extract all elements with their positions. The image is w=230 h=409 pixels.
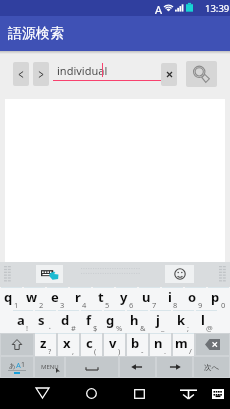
button[interactable]: a: [13, 310, 33, 333]
button[interactable]: c: [81, 333, 102, 356]
staticText: j: [156, 311, 160, 329]
button[interactable]: s: [35, 310, 56, 333]
button[interactable]: Backspace: [196, 334, 229, 355]
button[interactable]: individual: [53, 62, 161, 81]
staticText: g: [106, 311, 115, 329]
staticText: &: [140, 323, 146, 333]
staticText: ;: [187, 323, 190, 333]
button[interactable]: y: [116, 287, 137, 310]
button[interactable]: o: [185, 287, 206, 310]
staticText: i: [168, 288, 172, 306]
button[interactable]: k: [173, 310, 194, 333]
button[interactable]: n: [150, 333, 171, 356]
staticText: a: [17, 311, 25, 329]
button[interactable]: Cursor right: [157, 357, 192, 377]
button[interactable]: h: [127, 310, 148, 333]
staticText: A: [16, 360, 21, 370]
button[interactable]: i: [162, 287, 183, 310]
button[interactable]: m: [173, 333, 194, 356]
staticText: v: [109, 334, 117, 352]
button[interactable]: Clipboard: [36, 265, 63, 283]
staticText: 6: [129, 300, 134, 310]
staticText: y: [120, 288, 128, 306]
staticText: 4: [82, 300, 87, 310]
staticText: c: [86, 334, 93, 352]
button[interactable]: Back: [13, 62, 29, 86]
staticText: u: [142, 288, 151, 306]
staticText: _: [161, 323, 165, 333]
button[interactable]: q: [1, 287, 22, 310]
button[interactable]: Clear: [161, 63, 177, 86]
button[interactable]: u: [139, 287, 160, 310]
staticText: q: [4, 288, 13, 306]
button[interactable]: Shift: [1, 334, 33, 355]
button[interactable]: Back: [36, 388, 49, 398]
button[interactable]: Home: [86, 388, 97, 399]
button[interactable]: Hide keyboard: [180, 389, 197, 399]
button[interactable]: l: [196, 310, 217, 333]
staticText: r: [75, 288, 81, 306]
staticText: -: [141, 346, 144, 356]
staticText: 1: [21, 360, 26, 370]
staticText: d: [61, 311, 70, 329]
staticText: MENU: [41, 363, 59, 371]
staticText: z: [40, 334, 47, 352]
button[interactable]: v: [104, 333, 125, 356]
button[interactable]: Cursor left: [120, 357, 155, 377]
staticText: ,: [72, 346, 75, 356]
button[interactable]: w: [24, 287, 45, 310]
button[interactable]: g: [104, 310, 125, 333]
staticText: $: [93, 323, 98, 333]
button[interactable]: Space: [66, 357, 118, 377]
button[interactable]: x: [58, 333, 79, 356]
staticText: ): [118, 346, 121, 356]
staticText: 3: [60, 300, 65, 310]
staticText: /: [189, 346, 192, 356]
staticText: t: [98, 288, 104, 306]
button[interactable]: Menu: [35, 357, 64, 377]
staticText: e: [51, 288, 59, 306]
staticText: 5: [105, 300, 110, 310]
button[interactable]: Recent apps: [134, 389, 145, 399]
button[interactable]: z: [35, 333, 56, 356]
button[interactable]: Forward: [33, 62, 49, 86]
staticText: 語源検索: [8, 25, 64, 43]
button[interactable]: Switch keyboard: [212, 389, 224, 399]
staticText: 8: [173, 300, 178, 310]
staticText: h: [130, 311, 139, 329]
button[interactable]: Switch language: [1, 357, 33, 377]
staticText: o: [188, 288, 197, 306]
staticText: #: [71, 323, 76, 333]
staticText: 1: [14, 300, 19, 310]
button[interactable]: r: [70, 287, 91, 310]
staticText: @: [206, 323, 213, 333]
staticText: A: [155, 2, 163, 17]
button[interactable]: f: [81, 310, 102, 333]
staticText: 0: [221, 300, 226, 310]
staticText: 9: [198, 300, 203, 310]
button[interactable]: t: [93, 287, 114, 310]
button[interactable]: p: [208, 287, 229, 310]
staticText: b: [131, 334, 140, 352]
staticText: p: [211, 288, 220, 306]
staticText: 次へ: [204, 363, 220, 372]
button[interactable]: b: [127, 333, 148, 356]
button[interactable]: Next: [194, 357, 229, 377]
staticText: あ: [9, 362, 16, 370]
staticText: m: [175, 334, 188, 352]
staticText: f: [86, 311, 92, 329]
staticText: w: [26, 288, 38, 306]
button[interactable]: j: [150, 310, 171, 333]
button[interactable]: Emoji: [165, 265, 194, 283]
staticText: individual: [57, 63, 108, 78]
staticText: x: [63, 334, 71, 352]
button[interactable]: d: [58, 310, 79, 333]
staticText: %: [116, 323, 123, 333]
staticText: !: [26, 323, 29, 333]
staticText: l: [201, 311, 205, 329]
staticText: ・: [46, 324, 54, 333]
button[interactable]: Search: [186, 61, 217, 87]
button[interactable]: e: [47, 287, 68, 310]
staticText: n: [154, 334, 163, 352]
staticText: s: [38, 311, 45, 329]
